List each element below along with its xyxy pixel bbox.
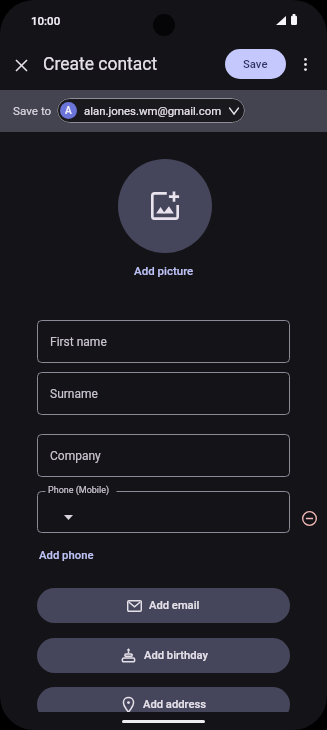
staticText: Company [50, 449, 101, 463]
button[interactable]: Surname [37, 372, 290, 415]
staticText: First name [50, 335, 107, 349]
button[interactable]: Phone (Mobile) [37, 491, 290, 533]
staticText: Phone (Mobile) [48, 485, 110, 496]
button[interactable]: Add address [37, 687, 290, 712]
button[interactable]: Add phone [39, 549, 94, 562]
staticText: Add address [143, 698, 206, 711]
button[interactable]: Add picture [118, 159, 212, 253]
button[interactable]: Add birthday [37, 638, 290, 673]
staticText: alan.jones.wm@gmail.com [84, 104, 222, 117]
button[interactable]: Close [5, 49, 37, 81]
button[interactable]: Add picture [134, 264, 194, 277]
button[interactable]: Save [225, 49, 286, 79]
button[interactable]: A [57, 98, 245, 123]
staticText: Add birthday [144, 649, 208, 662]
button[interactable]: Remove phone [297, 506, 321, 530]
button[interactable]: More options [290, 49, 321, 80]
staticText: 10:00 [31, 14, 61, 27]
staticText: Create contact [43, 54, 158, 75]
button[interactable]: First name [37, 320, 290, 363]
staticText: Save to [13, 104, 52, 118]
button[interactable]: Company [37, 434, 290, 477]
staticText: A [65, 105, 72, 117]
staticText: Save [243, 58, 268, 71]
staticText: Add email [149, 599, 200, 612]
staticText: Surname [50, 387, 98, 401]
button[interactable]: Add email [37, 588, 290, 623]
